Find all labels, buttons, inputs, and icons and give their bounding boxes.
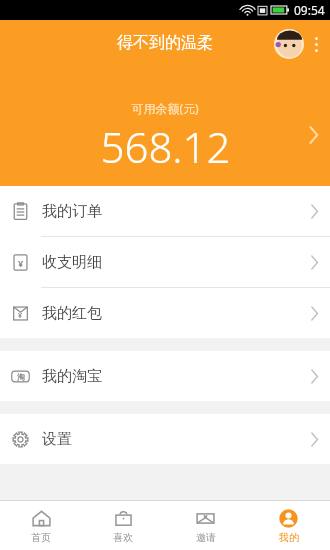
button[interactable]: Home [0, 501, 82, 550]
button[interactable]: 我的订单 [0, 186, 330, 236]
button[interactable]: Profile avatar [274, 29, 304, 59]
staticText: 收支明细 [42, 253, 102, 272]
staticText: 设置 [42, 430, 72, 449]
staticText: 我的 [279, 531, 299, 544]
staticText: 淘 [17, 372, 25, 382]
staticText: 我的红包 [42, 304, 102, 323]
staticText: ¥ [18, 257, 24, 269]
staticText: 09:54 [294, 2, 325, 18]
staticText: 首页 [31, 531, 51, 544]
button[interactable]: 淘 [0, 351, 330, 401]
button[interactable]: Favorites [82, 501, 164, 550]
button[interactable]: 可用余额(元) [0, 100, 330, 175]
button[interactable]: ¥ [0, 288, 330, 338]
other: Mine [278, 508, 299, 529]
button[interactable]: Mine [247, 501, 330, 550]
staticText: 568.12 [100, 118, 231, 175]
staticText: 我的订单 [42, 202, 102, 221]
staticText: 得不到的温柔 [117, 33, 213, 53]
staticText: 喜欢 [113, 531, 133, 544]
button[interactable]: 设置 [0, 414, 330, 464]
other: Favorites [113, 508, 134, 529]
staticText: 我的淘宝 [42, 367, 102, 386]
button[interactable]: Invite [164, 501, 247, 550]
staticText: ¥ [18, 311, 23, 321]
other: Invite [195, 508, 216, 529]
staticText: 邀请 [196, 531, 216, 544]
button[interactable]: ¥ [0, 237, 330, 287]
other: Home [31, 508, 52, 529]
staticText: 可用余额(元) [131, 100, 199, 116]
button[interactable]: More options [308, 29, 324, 59]
